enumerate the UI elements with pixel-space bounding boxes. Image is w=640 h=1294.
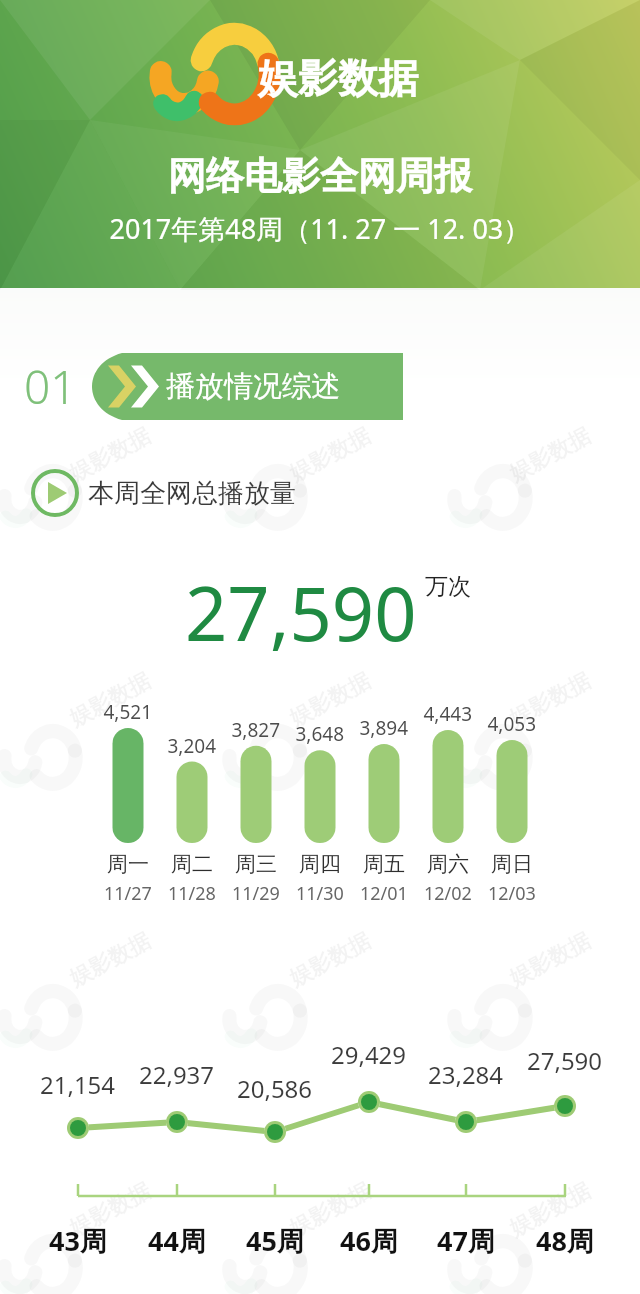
button[interactable]: Weekly web movie report: [0, 0, 640, 1294]
